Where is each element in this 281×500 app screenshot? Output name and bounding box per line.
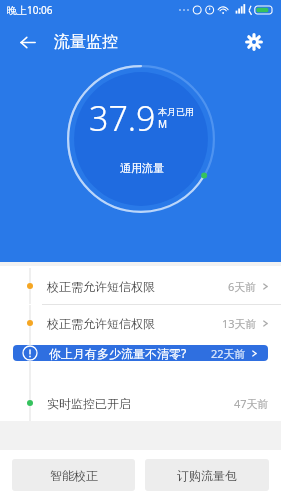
- staticText: 晚上10:06: [7, 3, 53, 17]
- staticText: 6天前: [228, 279, 257, 294]
- staticText: 流量监控: [54, 32, 118, 52]
- staticText: 实时监控已开启: [47, 396, 131, 411]
- staticText: 订购流量包: [177, 468, 237, 483]
- staticText: 37.9: [89, 95, 156, 141]
- staticText: 13天前: [222, 316, 257, 331]
- staticText: 通用流量: [120, 161, 164, 175]
- staticText: 47天前: [234, 396, 269, 411]
- button[interactable]: 订购流量包: [145, 459, 269, 491]
- button[interactable]: Back: [10, 25, 44, 59]
- button[interactable]: Settings: [237, 25, 271, 59]
- button[interactable]: 你上月有多少流量不清零?: [13, 345, 268, 361]
- button[interactable]: 智能校正: [12, 459, 135, 491]
- staticText: 22天前: [211, 346, 246, 361]
- staticText: 校正需允许短信权限: [47, 316, 155, 331]
- button[interactable]: 校正需允许短信权限: [0, 268, 281, 304]
- staticText: 校正需允许短信权限: [47, 279, 155, 294]
- staticText: M: [158, 117, 168, 131]
- staticText: 本月已用: [158, 106, 194, 117]
- staticText: 你上月有多少流量不清零?: [49, 345, 187, 361]
- button[interactable]: 校正需允许短信权限: [0, 305, 281, 341]
- button[interactable]: 实时监控已开启: [0, 385, 281, 421]
- staticText: 智能校正: [50, 468, 98, 483]
